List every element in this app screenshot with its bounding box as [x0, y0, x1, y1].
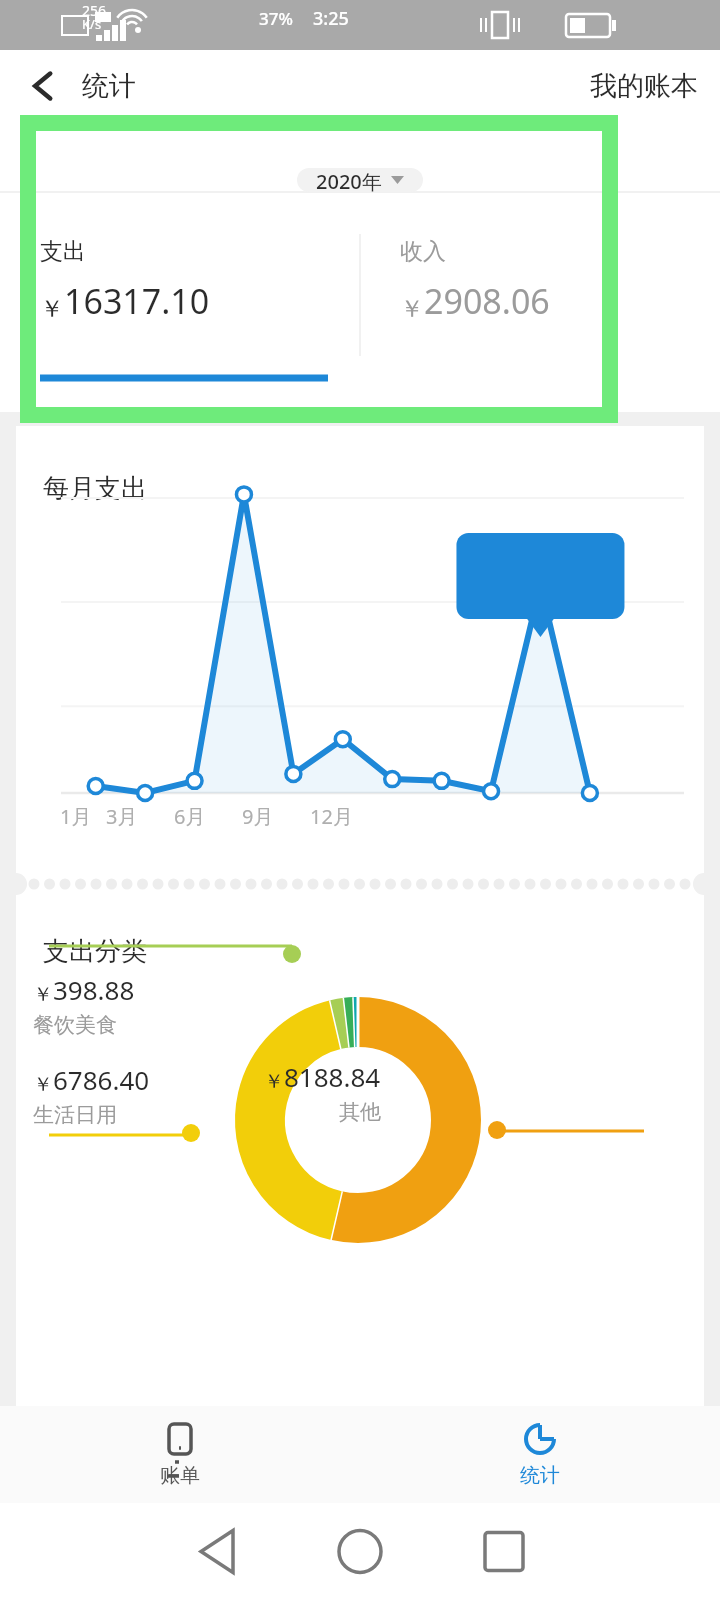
staticText: 256 — [82, 1, 107, 20]
staticText: 餐饮美食 — [33, 1012, 117, 1038]
staticText: ￥ — [33, 982, 53, 1007]
button[interactable]: 我的账本 — [590, 69, 698, 103]
button[interactable]: 统计 — [360, 1406, 720, 1503]
staticText: 收入 — [400, 237, 446, 266]
staticText: 2908.06 — [424, 278, 550, 324]
staticText: ￥ — [400, 294, 424, 324]
staticText: 3月 — [106, 803, 138, 830]
button[interactable]: 账单 — [0, 1406, 360, 1503]
staticText: 6月 — [174, 803, 206, 830]
staticText: 398.88 — [53, 972, 135, 1007]
staticText: 2020年 — [316, 168, 382, 192]
staticText: ￥ — [264, 1069, 284, 1094]
staticText: 1月 — [60, 803, 92, 830]
staticText: 37% — [259, 7, 293, 30]
button[interactable]: Back — [18, 60, 70, 112]
button[interactable]: ￥ — [16, 968, 704, 1406]
staticText: 账单 — [160, 1463, 200, 1488]
staticText: 12月 — [310, 803, 353, 830]
staticText: 9月 — [242, 803, 274, 830]
staticText: 3:25 — [313, 6, 349, 31]
staticText: ￥4429.58 — [165, 603, 221, 694]
staticText: 统计 — [82, 69, 136, 103]
button[interactable]: 2020年 — [297, 168, 423, 192]
staticText: 统计 — [520, 1463, 560, 1488]
staticText: 其他 — [339, 1099, 381, 1125]
staticText: 我的账本 — [590, 69, 698, 103]
staticText: 8188.84 — [284, 1059, 381, 1094]
staticText: 生活日用 — [33, 1102, 117, 1128]
staticText: K/s — [82, 15, 102, 33]
button[interactable]: 2020年10月 — [16, 505, 704, 875]
staticText: 6786.40 — [53, 1062, 150, 1097]
staticText: ￥ — [40, 294, 64, 324]
staticText: 每月支出 — [43, 472, 147, 505]
staticText: 支出 — [40, 237, 86, 266]
staticText: 支出分类 — [43, 935, 147, 968]
staticText: 16317.10 — [64, 278, 210, 324]
staticText: ￥ — [33, 1072, 53, 1097]
